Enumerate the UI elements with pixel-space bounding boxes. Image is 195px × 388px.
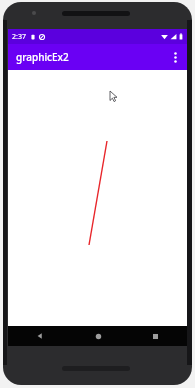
button[interactable]: Back (15, 326, 65, 346)
button[interactable] (8, 70, 187, 326)
button[interactable]: Home (73, 326, 123, 346)
button[interactable]: Recent apps (130, 326, 180, 346)
staticText: 2:37 (12, 32, 26, 42)
staticText: graphicEx2 (16, 50, 69, 64)
button[interactable]: More options (163, 45, 187, 69)
